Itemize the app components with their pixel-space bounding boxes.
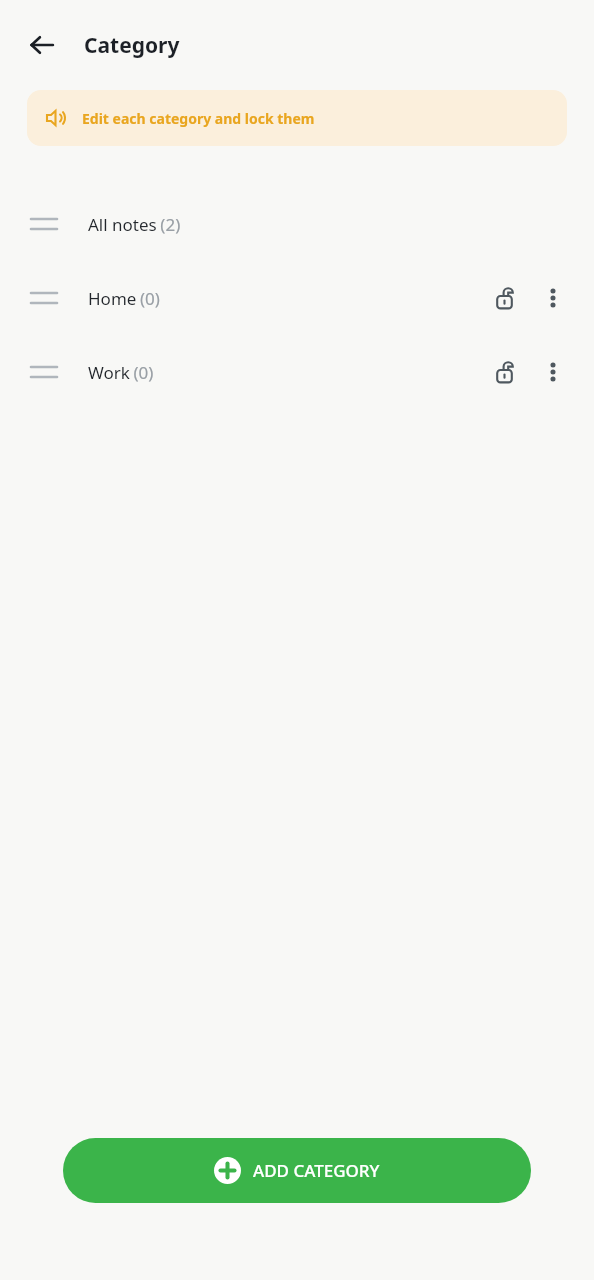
staticText: All notes (2)	[88, 213, 181, 236]
staticText: Edit each category and lock them	[82, 109, 315, 128]
staticText: Category	[84, 31, 180, 60]
button[interactable]: ADD CATEGORY	[63, 1138, 531, 1203]
staticText: Work (0)	[88, 361, 154, 384]
other: Reorder	[31, 360, 57, 384]
button[interactable]: Lock category	[482, 348, 530, 396]
button[interactable]: More options	[530, 274, 576, 322]
button[interactable]: Reorder	[0, 335, 594, 409]
other: Reorder	[31, 286, 57, 310]
staticText: ADD CATEGORY	[253, 1159, 380, 1182]
button[interactable]: Edit each category and lock them	[27, 90, 567, 146]
button[interactable]: Reorder	[0, 261, 594, 335]
other: Reorder	[31, 212, 57, 236]
button[interactable]: Back	[18, 21, 66, 69]
staticText: Home (0)	[88, 287, 160, 310]
button[interactable]: More options	[530, 348, 576, 396]
button[interactable]: Reorder	[0, 187, 594, 261]
button[interactable]: Lock category	[482, 274, 530, 322]
